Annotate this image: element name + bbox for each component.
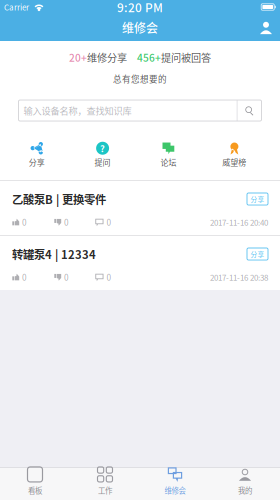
staticText: 0 — [106, 216, 111, 228]
button[interactable]: 输入设备名称，查找知识库 — [18, 100, 261, 121]
button[interactable]: 转罐泵4 | 12334 — [0, 236, 280, 290]
staticText: 乙酸泵B | 更换零件 — [12, 191, 106, 207]
staticText: 0 — [64, 216, 69, 228]
staticText: 转罐泵4 | 12334 — [12, 246, 96, 262]
staticText: 工作 — [98, 485, 112, 496]
staticText: 2017-11-16 20:40 — [210, 216, 268, 228]
staticText: 分享 — [250, 249, 264, 259]
button[interactable]: Account — [252, 14, 280, 41]
staticText: 提问被回答 — [161, 50, 211, 65]
staticText: 分享 — [29, 156, 45, 168]
staticText: 0 — [106, 271, 111, 283]
staticText: 0 — [22, 216, 27, 228]
staticText: 20+ — [69, 50, 87, 65]
staticText: 分享 — [250, 194, 264, 204]
staticText: 看板 — [28, 485, 42, 496]
staticText: 论坛 — [160, 156, 176, 168]
button[interactable]: 看板 — [0, 467, 70, 500]
button[interactable]: 我的 — [210, 467, 280, 500]
button[interactable]: 威望榜 — [201, 140, 267, 169]
button[interactable]: ? — [70, 140, 135, 169]
staticText: 输入设备名称，查找知识库 — [23, 104, 131, 117]
staticText: 维修会 — [122, 19, 158, 36]
staticText: 我的 — [238, 485, 252, 496]
staticText: ? — [100, 141, 105, 155]
staticText: 维修分享 — [87, 50, 127, 65]
staticText: 2017-11-16 20:38 — [210, 271, 268, 283]
staticText: 维修会 — [164, 485, 185, 496]
button[interactable]: 维修会 — [140, 467, 210, 500]
button[interactable]: 工作 — [70, 467, 140, 500]
staticText: 提问 — [95, 156, 111, 168]
staticText: 总有您想要的 — [113, 73, 167, 85]
button[interactable]: 论坛 — [135, 140, 201, 169]
staticText: 威望榜 — [222, 156, 246, 168]
staticText: 456+ — [137, 50, 161, 65]
staticText: Carrier — [4, 1, 29, 13]
button[interactable]: 分享 — [4, 140, 70, 169]
staticText: 0 — [22, 271, 27, 283]
staticText: 9:20 PM — [117, 0, 163, 16]
button[interactable]: 乙酸泵B | 更换零件 — [0, 181, 280, 235]
staticText: 0 — [64, 271, 69, 283]
